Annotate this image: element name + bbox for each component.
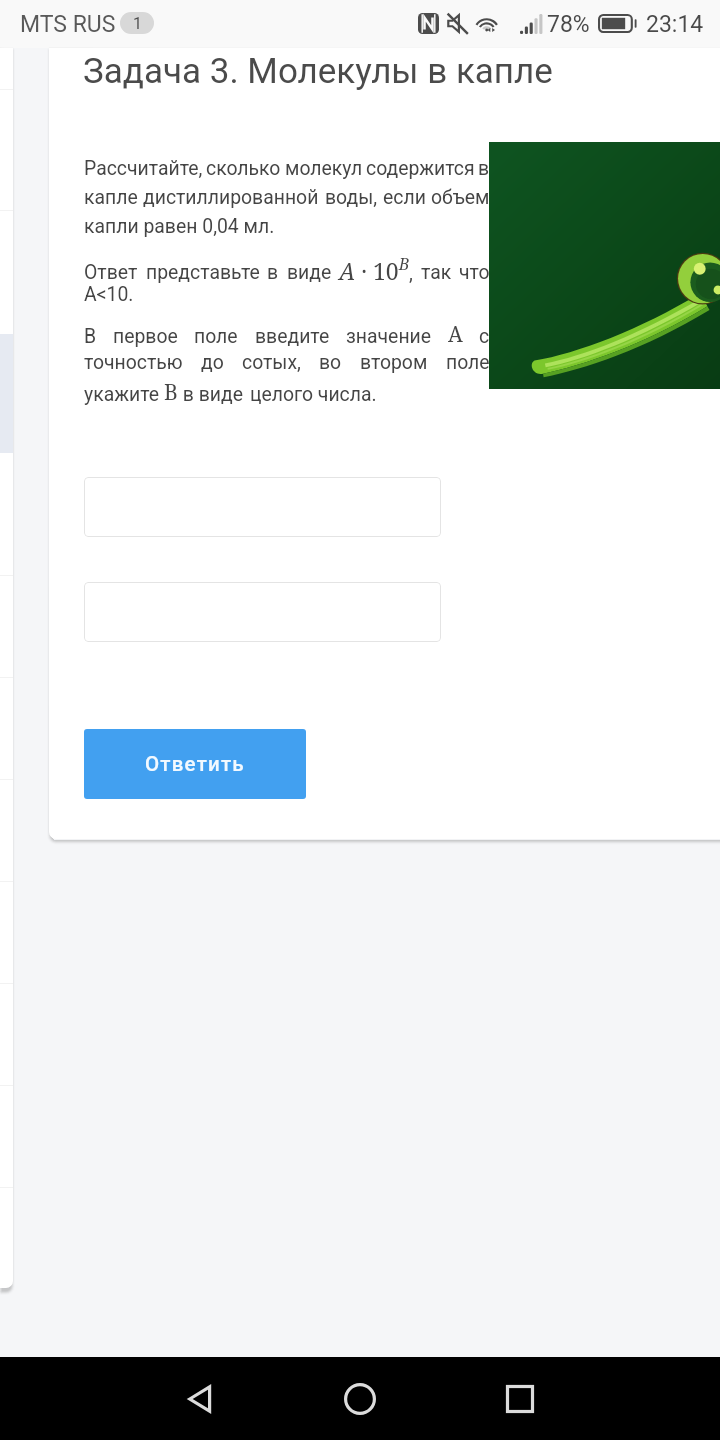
- staticText: точностью: [84, 351, 183, 374]
- button[interactable]: Input field: [84, 582, 441, 642]
- button[interactable]: Back: [160, 1359, 240, 1439]
- staticText: виде: [287, 261, 332, 284]
- staticText: значение: [346, 325, 432, 348]
- staticText: сколько: [206, 157, 281, 180]
- staticText: B: [164, 378, 178, 407]
- button[interactable]: Ответить: [84, 729, 306, 799]
- staticText: 78%: [547, 11, 590, 38]
- staticText: введите: [255, 325, 330, 348]
- staticText: в виде: [178, 383, 243, 406]
- staticText: втором: [360, 351, 428, 374]
- staticText: содержится: [366, 157, 475, 180]
- staticText: A · 10B,: [339, 253, 413, 286]
- staticText: до: [201, 351, 224, 374]
- staticText: капле: [84, 186, 138, 209]
- staticText: во: [319, 351, 342, 374]
- staticText: представьте: [146, 261, 260, 284]
- button[interactable]: Home: [320, 1359, 400, 1439]
- staticText: целого числа.: [250, 383, 377, 406]
- staticText: что: [459, 261, 490, 284]
- staticText: укажите: [84, 383, 164, 406]
- staticText: Задача 3. Молекулы в капле: [83, 51, 553, 92]
- staticText: если: [383, 186, 426, 209]
- staticText: молекул: [285, 157, 363, 180]
- staticText: объем: [431, 186, 490, 209]
- staticText: первое: [113, 325, 178, 348]
- staticText: поле: [194, 325, 238, 348]
- staticText: Ответ: [84, 261, 138, 284]
- staticText: сотых,: [242, 351, 301, 374]
- staticText: воды,: [325, 186, 378, 209]
- staticText: MTS RUS: [20, 11, 116, 38]
- staticText: 1: [133, 14, 142, 33]
- staticText: поле: [446, 351, 490, 374]
- staticText: Ответить: [145, 752, 245, 776]
- staticText: 23:14: [646, 11, 704, 38]
- staticText: так: [421, 261, 452, 284]
- staticText: Рассчитайте,: [84, 157, 203, 180]
- staticText: капли равен 0,04 мл.: [84, 215, 275, 238]
- staticText: в: [478, 157, 490, 180]
- staticText: A: [448, 320, 463, 349]
- staticText: дистиллированной: [143, 186, 319, 209]
- staticText: В: [84, 325, 97, 348]
- staticText: A<10.: [84, 283, 134, 306]
- button[interactable]: Input field: [84, 477, 441, 537]
- staticText: с: [479, 325, 490, 348]
- button[interactable]: Recents: [480, 1359, 560, 1439]
- staticText: в: [267, 261, 279, 284]
